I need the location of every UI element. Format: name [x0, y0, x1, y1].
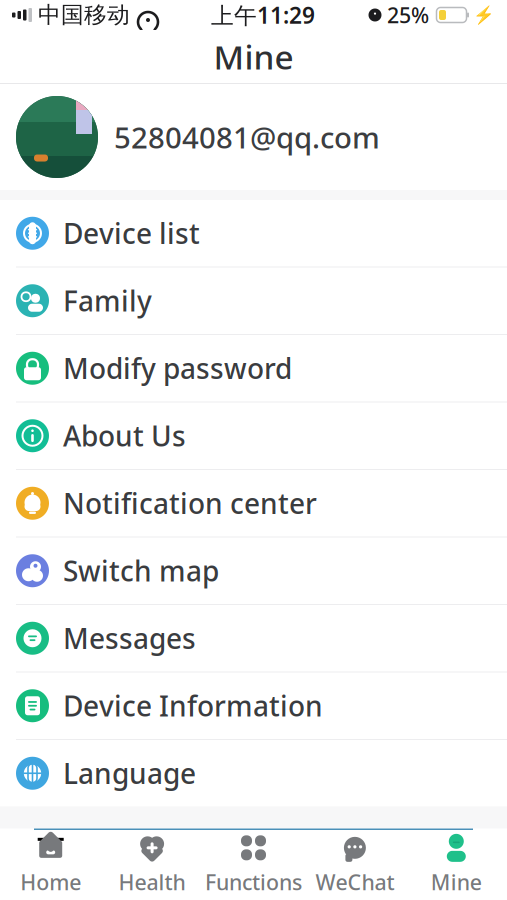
- staticText: 25%: [387, 1, 429, 29]
- staticText: Modify password: [63, 350, 292, 387]
- staticText: Device Information: [63, 687, 323, 724]
- staticText: Switch map: [63, 552, 219, 589]
- button[interactable]: Modify password: [0, 334, 507, 401]
- staticText: Mine: [431, 868, 482, 896]
- button[interactable]: Messages: [0, 604, 507, 671]
- button[interactable]: Language: [0, 739, 507, 806]
- staticText: Notification center: [63, 485, 317, 522]
- button[interactable]: Notification center: [0, 469, 507, 536]
- staticText: 中国移动: [38, 1, 130, 29]
- button[interactable]: Device Information: [0, 671, 507, 739]
- staticText: Home: [20, 868, 81, 896]
- button[interactable]: Device list: [0, 200, 507, 266]
- staticText: ⚡: [473, 5, 495, 25]
- staticText: Messages: [63, 620, 196, 657]
- button[interactable]: Mine: [406, 830, 507, 900]
- staticText: Family: [63, 282, 152, 319]
- button[interactable]: Switch map: [0, 536, 507, 604]
- button[interactable]: Family: [0, 266, 507, 334]
- staticText: 上午11:29: [211, 0, 315, 30]
- button[interactable]: About Us: [0, 401, 507, 469]
- staticText: Mine: [213, 34, 293, 79]
- staticText: Health: [119, 868, 186, 896]
- staticText: About Us: [63, 417, 186, 454]
- staticText: Language: [63, 755, 196, 792]
- staticText: WeChat: [315, 868, 394, 896]
- staticText: Functions: [205, 868, 302, 896]
- button[interactable]: 52804081@qq.com: [0, 84, 507, 190]
- staticText: Device list: [63, 215, 200, 252]
- button[interactable]: Functions: [203, 830, 304, 900]
- staticText: 52804081@qq.com: [114, 117, 380, 156]
- button[interactable]: Home: [0, 830, 101, 900]
- button[interactable]: Health: [101, 830, 203, 900]
- button[interactable]: WeChat: [304, 830, 406, 900]
